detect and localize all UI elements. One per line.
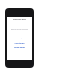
button[interactable]: Continue: [7, 42, 32, 44]
staticText: Need help?: [7, 46, 32, 48]
staticText: Welcome Back: [7, 18, 32, 20]
button[interactable]: Need help?: [7, 46, 32, 48]
staticText: Sign in to your account: [7, 28, 32, 30]
staticText: Continue: [7, 42, 32, 44]
